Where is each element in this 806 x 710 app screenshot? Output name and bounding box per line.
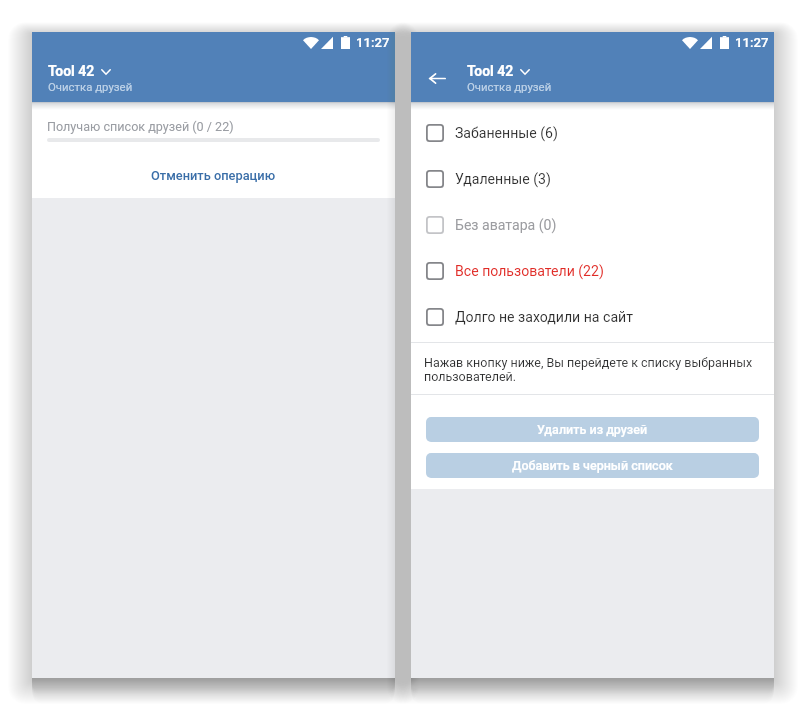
- staticText: 11:27: [735, 35, 769, 50]
- button[interactable]: Все пользователи (22): [411, 248, 774, 294]
- staticText: Долго не заходили на сайт: [455, 309, 633, 326]
- staticText: Нажав кнопку ниже, Вы перейдете к списку…: [424, 355, 761, 384]
- staticText: Tool 42: [48, 63, 95, 79]
- button[interactable]: Добавить в черный список: [426, 453, 759, 478]
- staticText: Tool 42: [467, 63, 514, 79]
- button[interactable]: Back: [411, 59, 467, 102]
- staticText: 11:27: [356, 35, 390, 50]
- button[interactable]: Долго не заходили на сайт: [411, 294, 774, 340]
- button[interactable]: Удаленные (3): [411, 156, 774, 202]
- staticText: Получаю список друзей (0 / 22): [47, 119, 234, 134]
- button[interactable]: Без аватара (0): [411, 202, 774, 248]
- button[interactable]: Забаненные (6): [411, 110, 774, 156]
- staticText: Очистка друзей: [467, 80, 552, 93]
- staticText: Добавить в черный список: [512, 458, 673, 473]
- staticText: Без аватара (0): [455, 217, 557, 234]
- staticText: Забаненные (6): [455, 125, 558, 142]
- staticText: Очистка друзей: [48, 80, 133, 93]
- staticText: Удалить из друзей: [537, 422, 648, 437]
- staticText: Отменить операцию: [151, 168, 276, 183]
- staticText: Удаленные (3): [455, 171, 551, 188]
- button[interactable]: Удалить из друзей: [426, 417, 759, 442]
- button[interactable]: Отменить операцию: [32, 162, 395, 188]
- staticText: Все пользователи (22): [455, 263, 604, 280]
